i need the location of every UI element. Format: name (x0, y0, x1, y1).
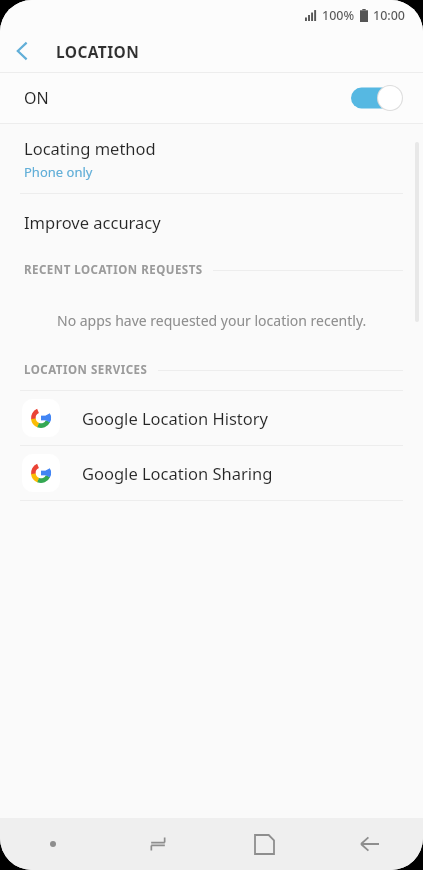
button[interactable]: ON (0, 73, 423, 123)
staticText: No apps have requested your location rec… (57, 311, 367, 330)
button[interactable]: Improve accuracy (0, 194, 423, 250)
staticText: Locating method (24, 137, 156, 159)
staticText: Google Location Sharing (82, 462, 273, 484)
button[interactable]: Back (0, 30, 44, 72)
button[interactable]: Google Location Sharing (0, 446, 423, 500)
staticText: 100% (322, 7, 355, 24)
staticText: LOCATION (56, 41, 140, 62)
staticText: RECENT LOCATION REQUESTS (24, 262, 203, 278)
button[interactable]: Menu indicator (0, 818, 105, 870)
button[interactable]: Home (211, 818, 317, 870)
staticText: ON (24, 87, 49, 109)
staticText: LOCATION SERVICES (24, 362, 148, 378)
button[interactable]: Locating method (0, 124, 423, 193)
staticText: Improve accuracy (24, 211, 161, 233)
button[interactable]: Recents (105, 818, 211, 870)
staticText: 10:00 (373, 7, 406, 24)
button[interactable]: Google Location History (0, 391, 423, 445)
staticText: Phone only (24, 163, 93, 181)
button[interactable]: Back (317, 818, 423, 870)
staticText: Google Location History (82, 407, 269, 429)
